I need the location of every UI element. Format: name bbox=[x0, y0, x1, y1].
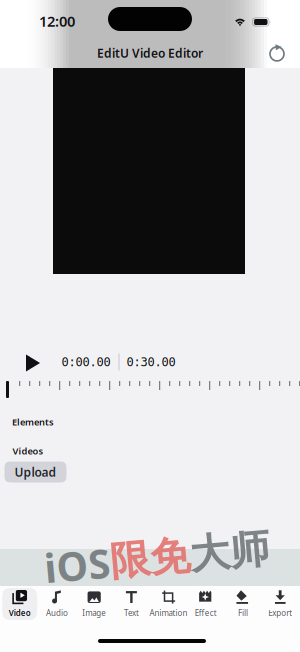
staticText: Export bbox=[268, 608, 292, 618]
staticText: 0:00.00 bbox=[61, 355, 110, 369]
staticText: Animation bbox=[150, 608, 188, 618]
staticText: 限免 bbox=[110, 533, 190, 582]
staticText: EditU Video Editor bbox=[97, 45, 203, 61]
button[interactable]: Animation bbox=[151, 588, 186, 620]
button[interactable]: Play bbox=[20, 348, 46, 377]
button[interactable]: Text bbox=[114, 588, 149, 620]
button[interactable]: Upload bbox=[4, 461, 66, 482]
staticText: iOS bbox=[44, 531, 110, 584]
button[interactable]: Video bbox=[2, 588, 37, 620]
button[interactable]: Redo bbox=[263, 39, 291, 67]
staticText: Fill bbox=[238, 608, 248, 618]
staticText: Effect bbox=[195, 608, 217, 618]
staticText: 大师 bbox=[190, 533, 270, 582]
staticText: Video bbox=[9, 608, 31, 618]
staticText: 12:00 bbox=[39, 11, 75, 31]
staticText: Upload bbox=[14, 464, 56, 480]
staticText: Audio bbox=[46, 608, 68, 618]
staticText: 0:30.00 bbox=[126, 355, 175, 369]
button[interactable]: Image bbox=[77, 588, 112, 620]
button[interactable]: Audio bbox=[39, 588, 74, 620]
staticText: Videos bbox=[12, 445, 43, 457]
button[interactable]: Fill bbox=[226, 588, 261, 620]
staticText: Image bbox=[82, 608, 106, 618]
staticText: Text bbox=[124, 608, 139, 618]
staticText: Elements bbox=[12, 416, 54, 428]
button[interactable]: Export bbox=[263, 588, 298, 620]
button[interactable]: Effect bbox=[188, 588, 223, 620]
